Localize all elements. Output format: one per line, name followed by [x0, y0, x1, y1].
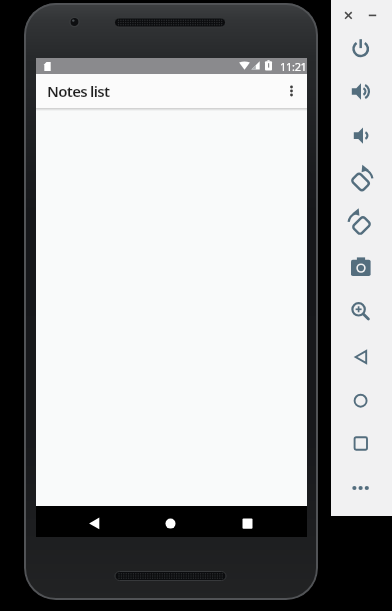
button[interactable]	[345, 294, 376, 325]
button[interactable]	[345, 473, 376, 504]
button[interactable]	[345, 428, 376, 459]
button[interactable]	[345, 166, 376, 197]
button[interactable]	[345, 34, 376, 65]
staticText: Notes list	[47, 81, 110, 101]
button[interactable]	[345, 121, 376, 152]
button[interactable]	[341, 8, 356, 23]
button[interactable]	[345, 342, 376, 373]
button[interactable]	[345, 209, 376, 240]
button[interactable]	[80, 509, 106, 535]
button[interactable]	[345, 77, 376, 108]
button[interactable]	[365, 8, 380, 23]
button[interactable]	[279, 74, 307, 108]
staticText: 11:21	[280, 59, 307, 74]
button[interactable]	[157, 509, 183, 535]
button[interactable]	[234, 509, 260, 535]
button[interactable]	[345, 386, 376, 417]
button[interactable]	[345, 253, 376, 284]
